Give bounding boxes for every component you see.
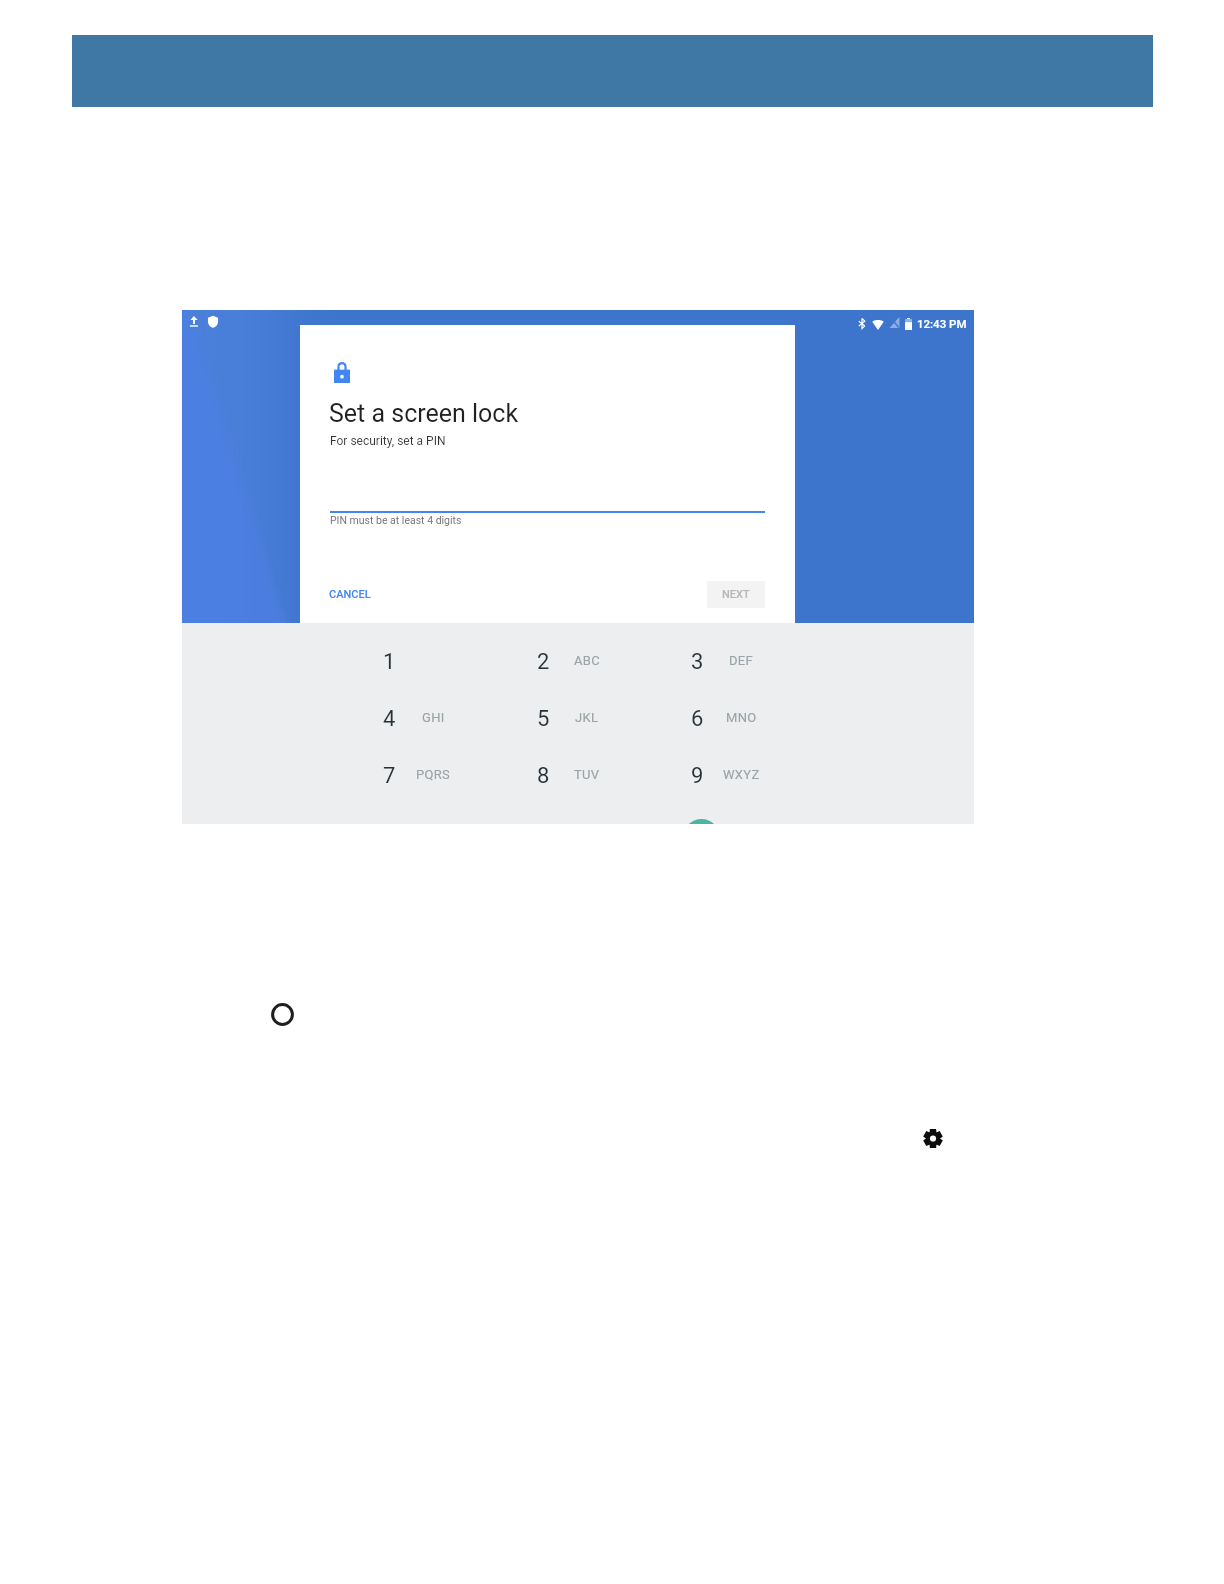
- staticText: TUV: [574, 767, 600, 782]
- button[interactable]: Home: [271, 1003, 294, 1026]
- staticText: 8: [537, 763, 550, 789]
- staticText: JKL: [575, 710, 599, 725]
- staticText: GHI: [422, 710, 445, 725]
- staticText: 6: [691, 706, 704, 732]
- button[interactable]: Settings: [923, 1128, 943, 1149]
- button[interactable]: Confirm: [683, 819, 720, 824]
- staticText: 9: [691, 763, 704, 789]
- staticText: 1: [383, 649, 396, 675]
- staticText: NEXT: [722, 588, 750, 601]
- staticText: For security, set a PIN: [330, 434, 446, 448]
- button[interactable]: CANCEL: [321, 581, 379, 608]
- button[interactable]: 7: [360, 750, 494, 800]
- staticText: WXYZ: [723, 767, 760, 782]
- button[interactable]: 5: [514, 693, 648, 743]
- button[interactable]: 4: [360, 693, 494, 743]
- button[interactable]: 3: [668, 636, 802, 686]
- button[interactable]: 1: [360, 636, 494, 686]
- staticText: MNO: [726, 710, 757, 725]
- staticText: ABC: [574, 653, 600, 668]
- button[interactable]: PIN entry field: [330, 469, 765, 513]
- staticText: 2: [537, 649, 550, 675]
- staticText: DEF: [729, 653, 754, 668]
- staticText: CANCEL: [329, 588, 371, 601]
- staticText: 7: [383, 763, 396, 789]
- button[interactable]: 2: [514, 636, 648, 686]
- staticText: PIN must be at least 4 digits: [330, 514, 462, 526]
- staticText: 3: [691, 649, 704, 675]
- staticText: 5: [537, 706, 550, 732]
- button[interactable]: 9: [668, 750, 802, 800]
- staticText: 4: [383, 706, 396, 732]
- button[interactable]: NEXT: [707, 581, 765, 608]
- button[interactable]: 8: [514, 750, 648, 800]
- staticText: 12:43 PM: [917, 317, 967, 330]
- staticText: Set a screen lock: [329, 399, 519, 428]
- button[interactable]: 6: [668, 693, 802, 743]
- staticText: PQRS: [416, 767, 451, 782]
